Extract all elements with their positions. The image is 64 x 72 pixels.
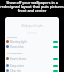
button[interactable]: Clear sky — [5, 69, 59, 72]
staticText: Morning light — [10, 40, 53, 44]
button[interactable]: Toggle — [53, 70, 58, 72]
staticText: Deep water — [10, 64, 53, 68]
staticText: Clear sky — [10, 69, 53, 72]
staticText: Desert dunes — [10, 57, 53, 61]
staticText: Favorites — [7, 35, 18, 38]
staticText: Show off your wallpapers in a redesigned… — [0, 0, 64, 13]
button[interactable]: Desert dunes — [5, 55, 59, 62]
staticText: Ocean blue — [10, 45, 53, 49]
staticText: All wallpapers — [7, 51, 23, 54]
button[interactable]: Ocean blue — [5, 44, 59, 49]
button[interactable]: Toggle — [53, 65, 58, 67]
button[interactable]: Deep water — [5, 62, 59, 69]
button[interactable]: Morning light — [5, 39, 59, 44]
button[interactable]: Toggle — [53, 46, 58, 48]
button[interactable]: Toggle — [53, 41, 58, 43]
staticText: Wallpaper & style — [5, 24, 59, 28]
button[interactable]: Toggle — [53, 58, 58, 60]
